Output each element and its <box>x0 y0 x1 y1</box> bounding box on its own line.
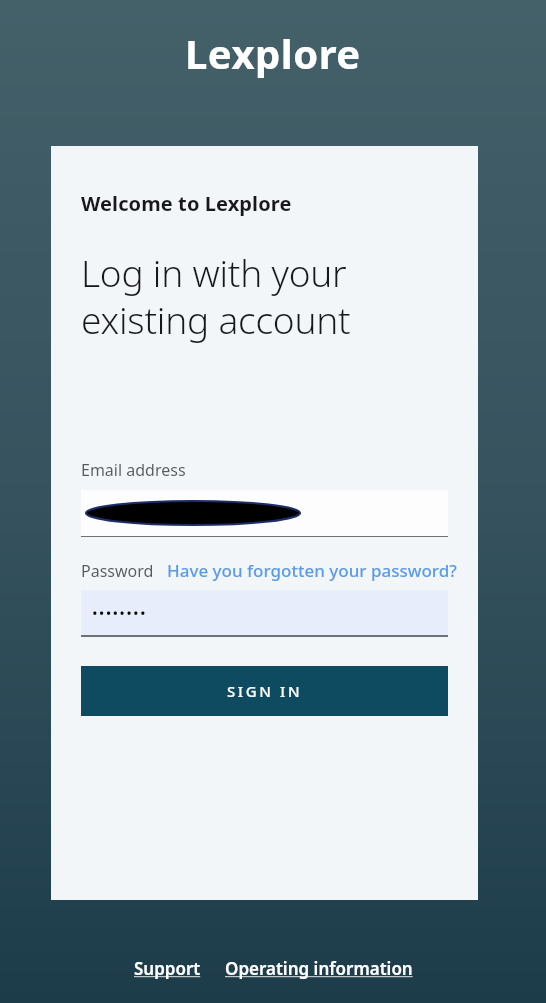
staticText: Log in with your existing account <box>81 247 351 345</box>
staticText: •••••••• <box>92 603 147 623</box>
staticText: Have you forgotten your password? <box>167 559 457 582</box>
button[interactable]: Support <box>134 957 205 980</box>
button[interactable]: •••••••• <box>81 590 448 637</box>
staticText: Support <box>134 957 205 980</box>
staticText: Welcome to Lexplore <box>81 190 292 217</box>
button[interactable]: Operating information <box>225 957 413 980</box>
button[interactable]: SIGN IN <box>81 666 448 716</box>
staticText: Email address <box>81 459 186 481</box>
staticText: SIGN IN <box>227 681 303 701</box>
staticText: Lexplore <box>185 26 361 80</box>
staticText: Password <box>81 560 154 582</box>
button[interactable]: Have you forgotten your password? <box>167 559 457 582</box>
staticText: Operating information <box>225 957 413 980</box>
button[interactable] <box>81 490 448 537</box>
